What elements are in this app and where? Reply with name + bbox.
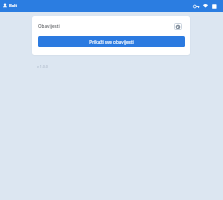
button[interactable]: Battery xyxy=(211,3,218,10)
staticText: Obavijesti xyxy=(38,23,60,29)
button[interactable]: History xyxy=(174,23,182,30)
staticText: Bolt xyxy=(9,3,18,9)
button[interactable]: VPN xyxy=(193,3,200,10)
button[interactable]: Prikaži sve obavijesti xyxy=(38,36,185,47)
button[interactable]: Wi-Fi xyxy=(202,3,209,10)
staticText: v 1.0.0 xyxy=(37,64,48,69)
staticText: Prikaži sve obavijesti xyxy=(89,39,134,45)
